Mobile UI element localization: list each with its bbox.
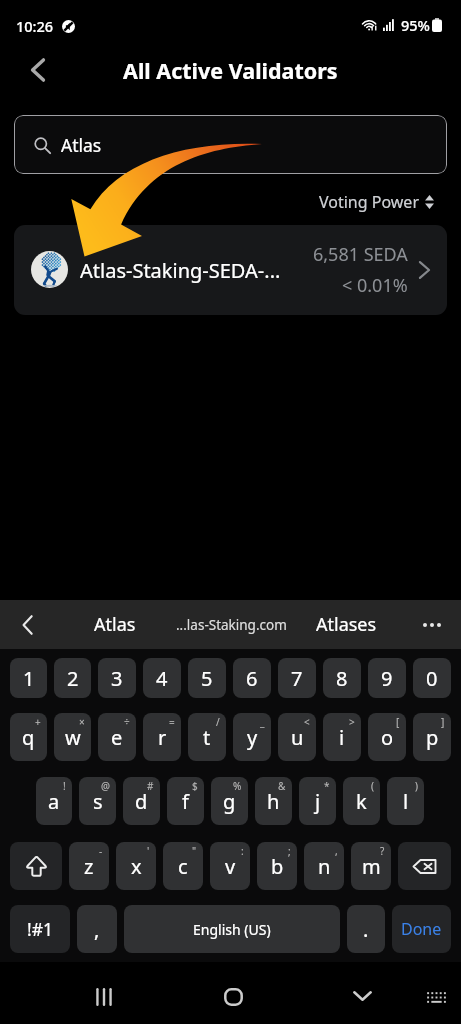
staticText: $: [192, 779, 198, 793]
button[interactable]: d: [123, 777, 160, 825]
button[interactable]: e: [98, 713, 136, 761]
staticText: #: [147, 779, 154, 793]
staticText: s: [93, 788, 103, 815]
button[interactable]: p: [413, 713, 451, 761]
button[interactable]: l: [387, 777, 424, 825]
button[interactable]: 7: [278, 658, 316, 698]
button[interactable]: ...las-Staking.com: [174, 600, 289, 649]
button[interactable]: Hide keyboard: [330, 965, 394, 1024]
button[interactable]: h: [255, 777, 292, 825]
button[interactable]: 9: [368, 658, 406, 698]
button[interactable]: z: [69, 842, 109, 890]
staticText: 9: [381, 665, 393, 692]
staticText: 6,581 SEDA: [313, 242, 408, 267]
button[interactable]: t: [188, 713, 226, 761]
button[interactable]: Backspace: [398, 842, 451, 890]
button[interactable]: Shift: [10, 842, 62, 890]
button[interactable]: u: [278, 713, 316, 761]
button[interactable]: r: [143, 713, 181, 761]
button[interactable]: 2: [54, 658, 91, 698]
staticText: ,: [94, 916, 100, 943]
button[interactable]: f: [167, 777, 204, 825]
button[interactable]: Atlas-Staking-SEDA-...: [14, 225, 447, 315]
staticText: i: [339, 724, 345, 751]
button[interactable]: 1: [10, 658, 47, 698]
staticText: ]: [441, 715, 445, 729]
button[interactable]: v: [210, 842, 250, 890]
button[interactable]: Previous suggestions: [5, 600, 49, 649]
button[interactable]: i: [323, 713, 361, 761]
staticText: 10:26: [16, 16, 54, 36]
staticText: %: [233, 779, 242, 793]
button[interactable]: Done: [392, 905, 451, 953]
staticText: ×: [79, 715, 85, 729]
button[interactable]: !#1: [10, 905, 70, 953]
staticText: q: [22, 724, 35, 751]
button[interactable]: 5: [188, 658, 226, 698]
staticText: u: [291, 724, 304, 751]
staticText: g: [223, 788, 236, 815]
staticText: c: [178, 853, 188, 880]
button[interactable]: 3: [98, 658, 136, 698]
button[interactable]: x: [116, 842, 156, 890]
staticText: m: [362, 853, 381, 880]
staticText: o: [381, 724, 394, 751]
staticText: ...las-Staking.com: [176, 616, 287, 634]
staticText: ?: [380, 844, 385, 858]
staticText: .: [363, 916, 369, 943]
staticText: r: [158, 724, 167, 751]
staticText: 7: [291, 665, 303, 692]
staticText: =: [169, 715, 175, 729]
staticText: 3: [111, 665, 123, 692]
button[interactable]: k: [343, 777, 380, 825]
button[interactable]: Atlases: [303, 600, 390, 649]
button[interactable]: 8: [323, 658, 361, 698]
button[interactable]: Recent apps: [72, 966, 136, 1024]
button[interactable]: c: [163, 842, 203, 890]
button[interactable]: More options: [410, 600, 454, 649]
button[interactable]: ,: [77, 905, 117, 953]
staticText: p: [426, 724, 439, 751]
staticText: -: [99, 844, 103, 858]
button[interactable]: o: [368, 713, 406, 761]
button[interactable]: Voting Power: [311, 186, 461, 218]
staticText: Atlas: [61, 133, 102, 157]
staticText: n: [318, 853, 331, 880]
staticText: 8: [336, 665, 348, 692]
staticText: e: [111, 724, 123, 751]
staticText: *: [324, 779, 330, 793]
button[interactable]: b: [257, 842, 297, 890]
button[interactable]: y: [233, 713, 271, 761]
staticText: ;: [288, 844, 291, 858]
staticText: _: [260, 715, 265, 729]
button[interactable]: Home: [201, 966, 265, 1024]
staticText: 2: [67, 665, 79, 692]
button[interactable]: s: [79, 777, 116, 825]
button[interactable]: Atlas: [14, 115, 447, 174]
staticText: Atlases: [316, 612, 377, 637]
button[interactable]: 0: [413, 658, 451, 698]
button[interactable]: Atlas: [71, 600, 158, 649]
staticText: 6: [246, 665, 258, 692]
staticText: [: [396, 715, 400, 729]
staticText: f: [182, 788, 189, 815]
button[interactable]: Back: [16, 44, 60, 96]
button[interactable]: j: [299, 777, 336, 825]
button[interactable]: m: [351, 842, 391, 890]
staticText: /: [216, 715, 220, 729]
button[interactable]: w: [54, 713, 91, 761]
button[interactable]: a: [36, 777, 72, 825]
button[interactable]: q: [10, 713, 47, 761]
staticText: Voting Power: [319, 191, 420, 213]
button[interactable]: English (US): [124, 905, 340, 953]
staticText: 1: [23, 665, 35, 692]
staticText: t: [203, 724, 211, 751]
button[interactable]: Change keyboard: [404, 966, 461, 1024]
button[interactable]: 6: [233, 658, 271, 698]
button[interactable]: 4: [143, 658, 181, 698]
staticText: 5: [201, 665, 213, 692]
staticText: d: [135, 788, 148, 815]
button[interactable]: n: [304, 842, 344, 890]
button[interactable]: g: [211, 777, 248, 825]
button[interactable]: .: [347, 905, 385, 953]
